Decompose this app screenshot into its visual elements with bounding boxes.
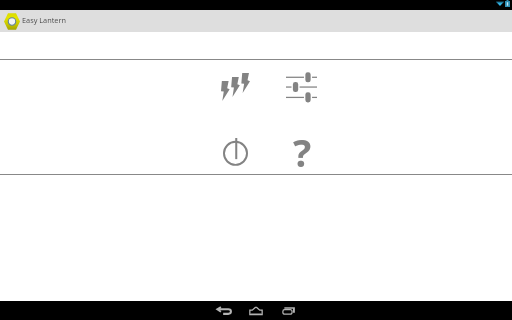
button[interactable]: Home [240,301,272,320]
button[interactable]: Settings [268,54,334,119]
staticText: Easy Lantern [22,15,66,25]
button[interactable]: Back [208,301,240,320]
button[interactable]: Strobe [203,55,268,119]
button[interactable]: Help [269,119,335,184]
staticText: ? [293,126,312,178]
button[interactable]: Easy Lantern [0,10,512,32]
button[interactable]: Power [203,119,268,184]
button[interactable]: Recent apps [272,301,304,320]
